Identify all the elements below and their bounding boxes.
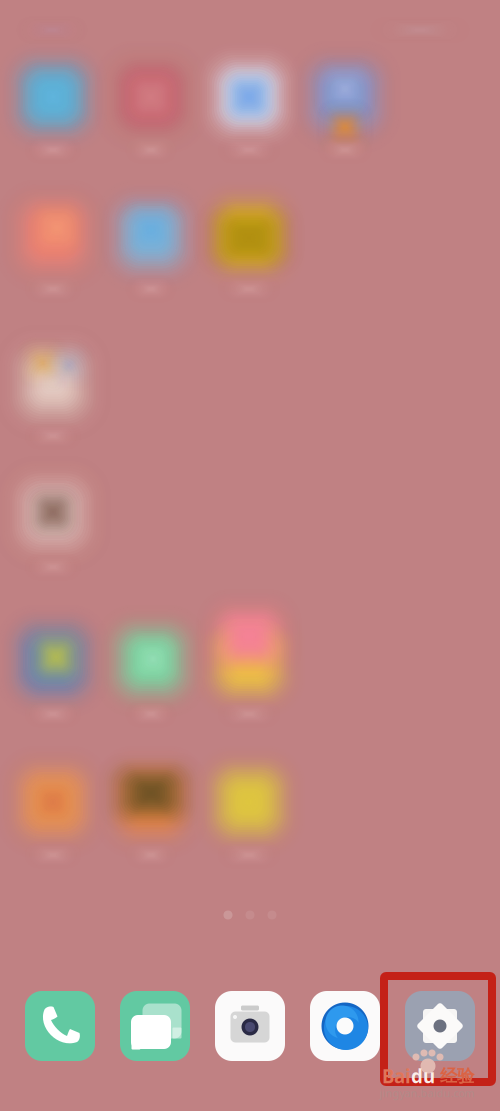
- button[interactable]: Phone: [25, 991, 95, 1061]
- button[interactable]: Settings: [405, 991, 475, 1061]
- staticText: Bai: [382, 1064, 411, 1088]
- staticText: jingyan.baidu.com: [379, 1086, 474, 1100]
- button[interactable]: Messages: [120, 991, 190, 1061]
- staticText: 经验: [435, 1065, 474, 1087]
- staticText: du: [411, 1064, 435, 1088]
- button[interactable]: Browser: [310, 991, 380, 1061]
- button[interactable]: Camera: [215, 991, 285, 1061]
